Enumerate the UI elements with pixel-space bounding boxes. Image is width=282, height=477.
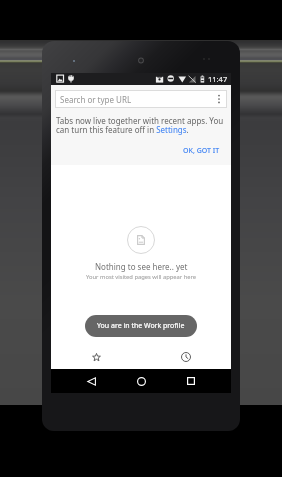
button[interactable]: Bookmarks	[51, 345, 141, 369]
button[interactable]: Home	[116, 369, 166, 393]
staticText: You are in the Work profile	[97, 321, 185, 331]
button[interactable]: You are in the Work profile	[85, 315, 197, 337]
button[interactable]: Back	[66, 369, 116, 393]
staticText: OK, GOT IT	[183, 146, 220, 156]
button[interactable]: More options	[211, 91, 227, 107]
button[interactable]: OK, GOT IT	[173, 136, 231, 165]
button[interactable]: Search or type URL	[55, 90, 227, 108]
staticText: Search or type URL	[60, 94, 132, 105]
button[interactable]: History	[141, 345, 231, 369]
staticText: Tabs now live together with recent apps.…	[56, 115, 224, 136]
staticText: Your most visited pages will appear here	[86, 273, 197, 281]
staticText: 11:47	[208, 74, 228, 84]
staticText: Nothing to see here.. yet	[95, 261, 188, 272]
button[interactable]: Recent apps	[166, 369, 216, 393]
